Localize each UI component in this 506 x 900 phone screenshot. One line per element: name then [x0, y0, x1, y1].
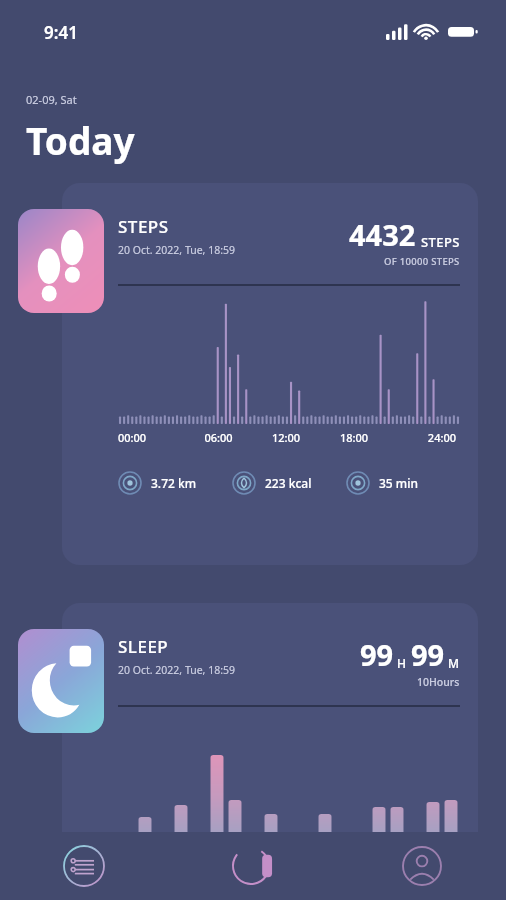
button[interactable]: Steps [18, 209, 104, 313]
staticText: 18:00 [320, 430, 388, 445]
staticText: 10Hours [417, 675, 460, 689]
staticText: Today [26, 115, 135, 165]
staticText: 00:00 [118, 430, 185, 445]
button[interactable]: Profile [337, 832, 506, 900]
staticText: STEPS [421, 233, 460, 251]
staticText: 24:00 [388, 430, 456, 445]
staticText: STEPS [118, 215, 169, 238]
staticText: H [397, 655, 406, 671]
staticText: 3.72 km [151, 475, 197, 491]
button[interactable]: Dashboard [0, 832, 168, 900]
button[interactable]: SLEEP [62, 603, 478, 893]
button[interactable]: STEPS [62, 183, 478, 565]
staticText: 35 min [379, 475, 418, 491]
staticText: 4432 [349, 215, 416, 254]
staticText: M [448, 655, 460, 671]
button[interactable]: 223 kcal [232, 471, 346, 495]
button[interactable]: Sleep [18, 629, 104, 733]
button[interactable]: Device [168, 832, 337, 900]
staticText: 20 Oct. 2022, Tue, 18:59 [118, 663, 235, 677]
staticText: SLEEP [118, 635, 169, 658]
button[interactable]: 3.72 km [118, 471, 232, 495]
staticText: 20 Oct. 2022, Tue, 18:59 [118, 243, 235, 257]
staticText: 06:00 [185, 430, 252, 445]
staticText: 12:00 [252, 430, 320, 445]
staticText: 9:41 [44, 21, 78, 44]
staticText: 02-09, Sat [26, 92, 77, 107]
button[interactable]: 35 min [346, 471, 460, 495]
staticText: 99 [360, 635, 394, 674]
staticText: 223 kcal [265, 475, 312, 491]
staticText: 99 [411, 635, 445, 674]
staticText: OF 10000 STEPS [384, 255, 460, 268]
